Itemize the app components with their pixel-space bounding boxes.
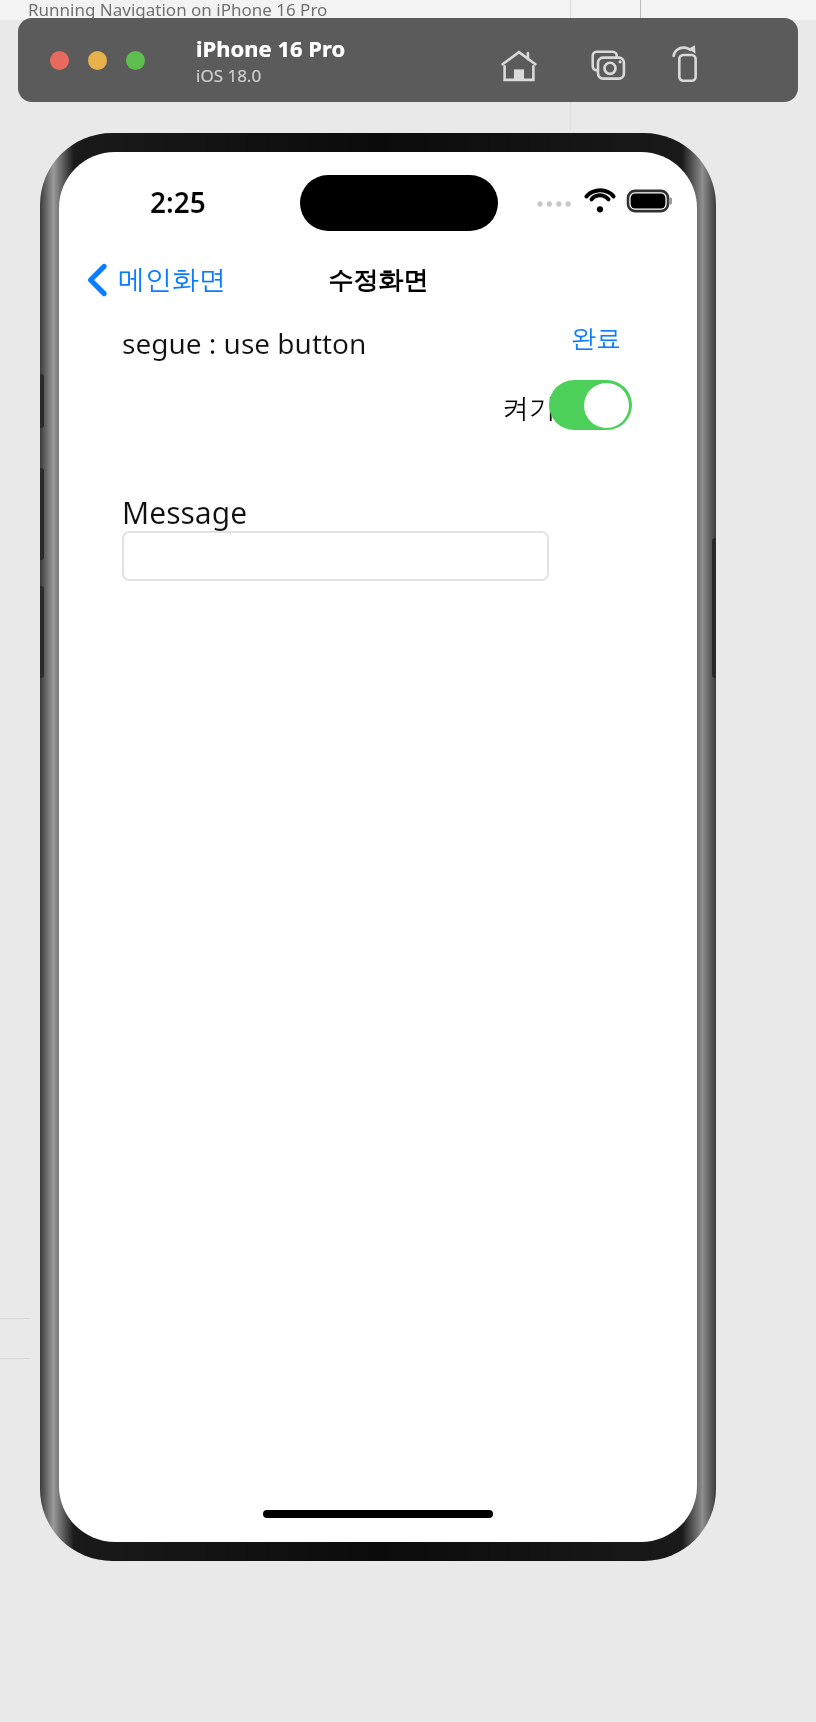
button[interactable]: Maximize (126, 51, 145, 70)
button[interactable]: Toggle on (549, 380, 632, 430)
staticText: 켜기 (502, 392, 556, 426)
button[interactable]: Minimize (88, 51, 107, 70)
staticText: Message (122, 492, 248, 533)
staticText: Running Navigation on iPhone 16 Pro (28, 0, 328, 21)
button[interactable]: 완료 (571, 314, 621, 362)
staticText: 완료 (571, 323, 621, 354)
button[interactable]: Rotate (663, 43, 711, 89)
staticText: 수정화면 (328, 265, 428, 296)
staticText: iOS 18.0 (196, 64, 262, 87)
staticText: 메인화면 (118, 263, 226, 297)
staticText: 2:25 (150, 183, 206, 221)
button[interactable]: Message text field (122, 531, 549, 581)
staticText: segue : use button (122, 324, 367, 362)
staticText: iPhone 16 Pro (196, 33, 346, 63)
button[interactable]: Screenshot (586, 45, 634, 87)
button[interactable]: 메인화면 (81, 252, 236, 308)
button[interactable]: Close (50, 51, 69, 70)
button[interactable]: Home (495, 45, 543, 87)
